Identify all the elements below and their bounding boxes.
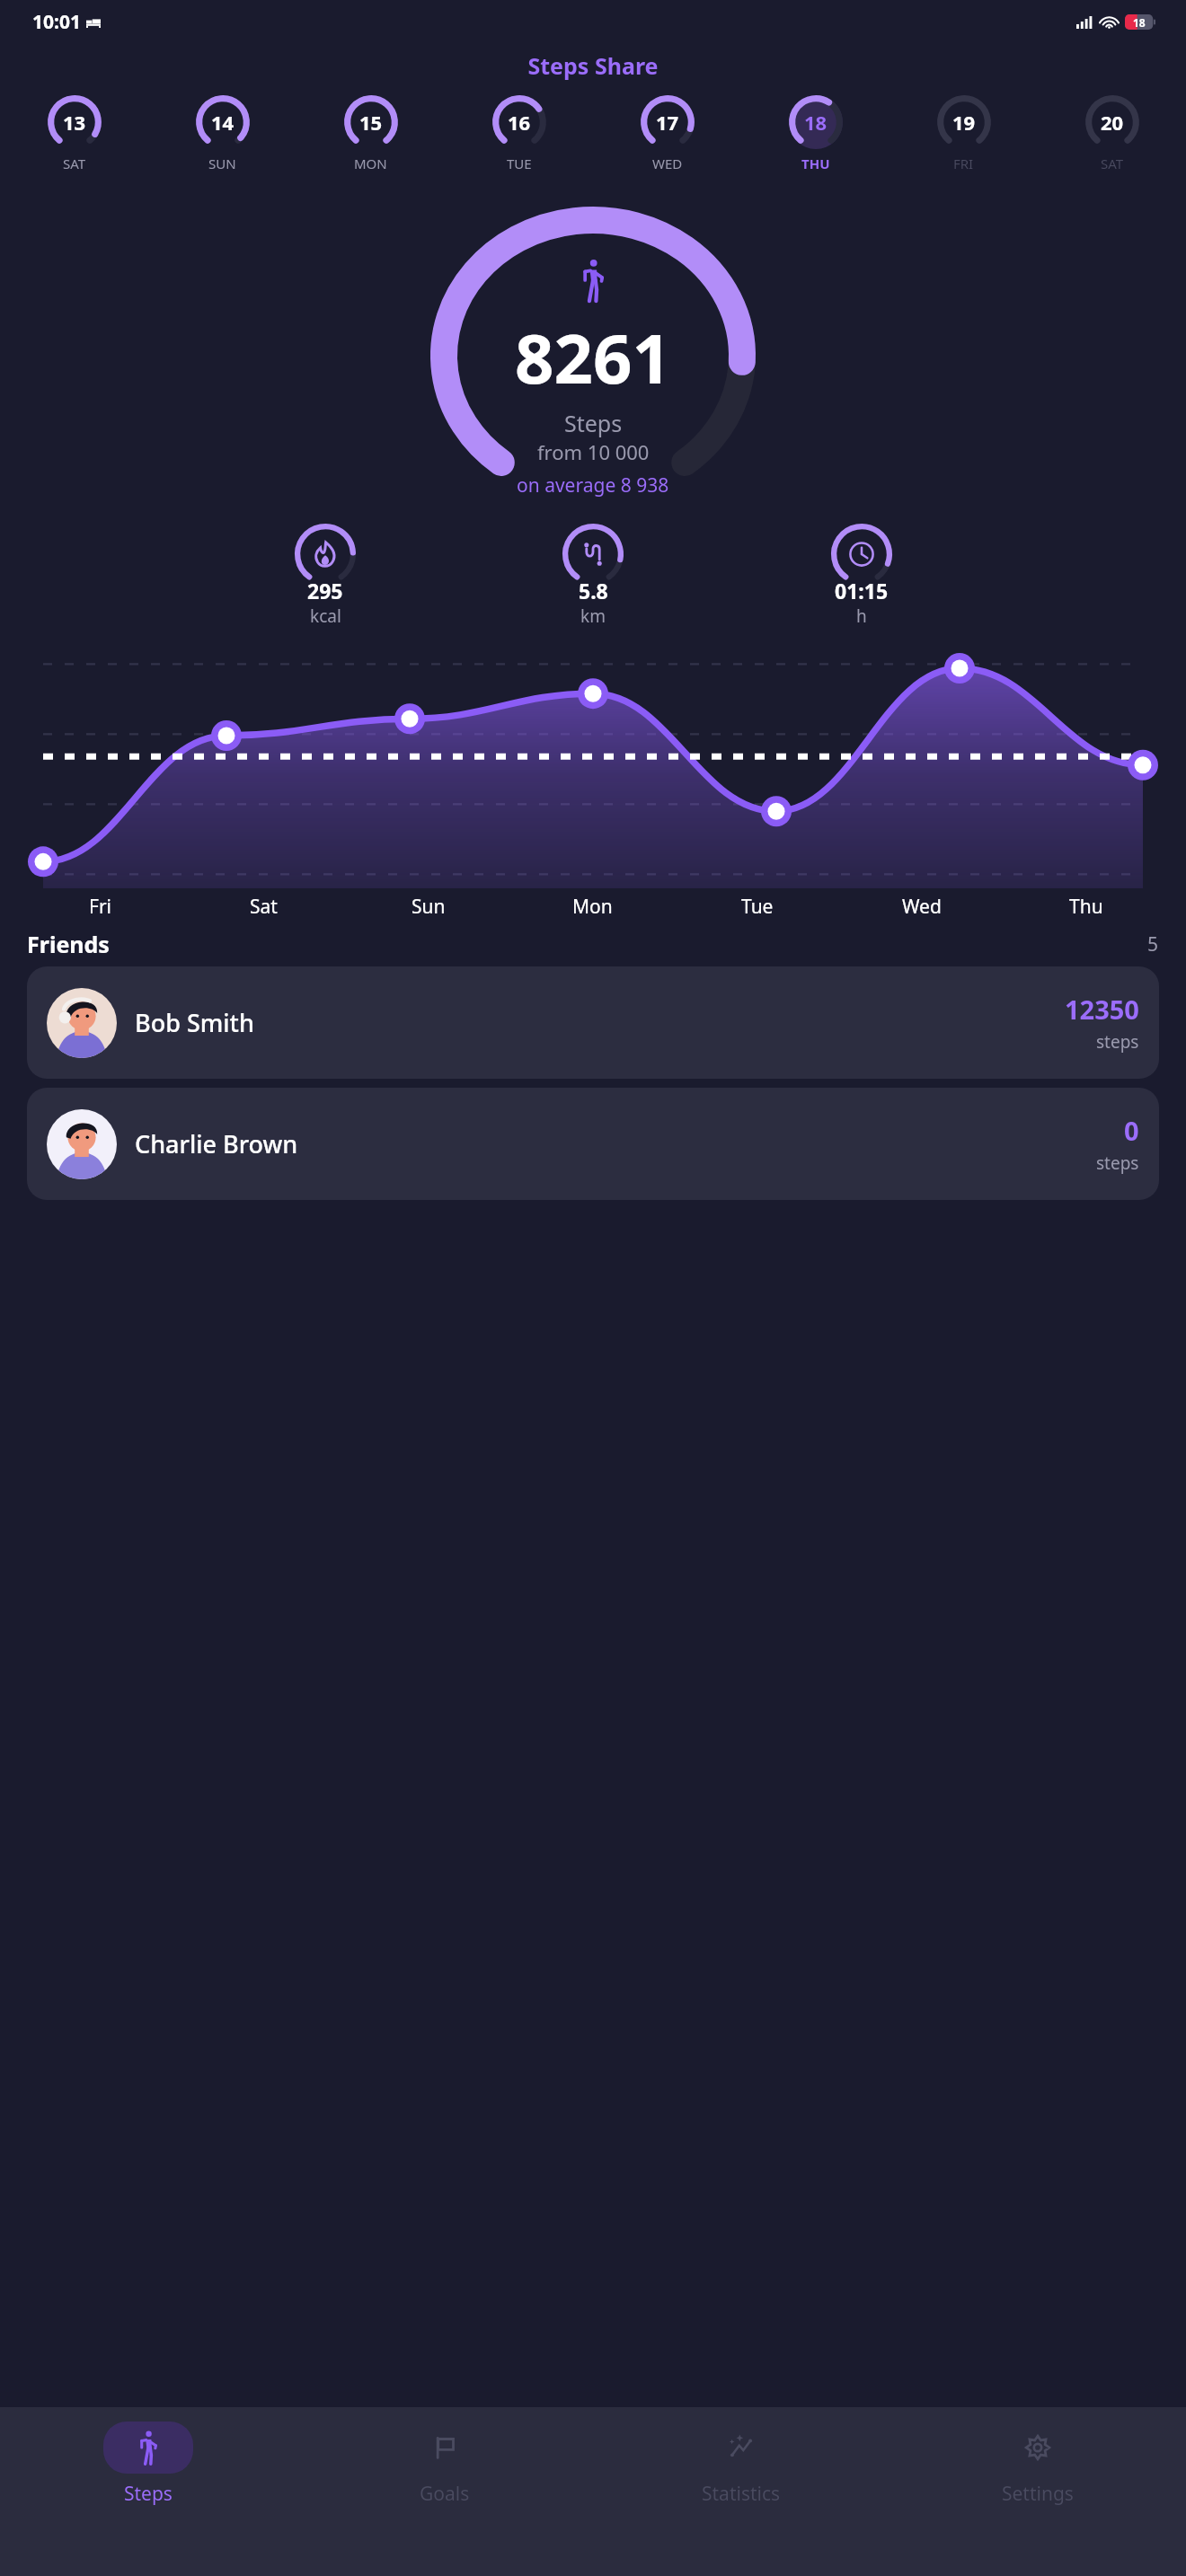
staticText: on average 8 938	[517, 472, 669, 498]
staticText: 18	[1133, 15, 1146, 30]
staticText: km	[580, 604, 606, 628]
staticText: Bob Smith	[135, 1006, 254, 1039]
button[interactable]: Goals	[296, 2422, 593, 2507]
staticText: 13	[63, 109, 86, 136]
staticText: steps	[1096, 1030, 1139, 1054]
staticText: 0	[1124, 1113, 1139, 1148]
button[interactable]: Bob Smith	[27, 966, 1159, 1079]
button[interactable]: 14	[148, 92, 296, 190]
staticText: Goals	[420, 2481, 470, 2507]
staticText: Thu	[1069, 894, 1103, 920]
staticText: THU	[801, 154, 830, 172]
staticText: SUN	[208, 154, 236, 172]
staticText: Fri	[89, 894, 111, 920]
staticText: FRI	[953, 154, 974, 172]
button[interactable]: 5.8	[560, 521, 626, 639]
button[interactable]: 19	[889, 92, 1038, 190]
staticText: 8261	[515, 311, 671, 404]
staticText: Statistics	[702, 2481, 781, 2507]
staticText: 10:01	[32, 9, 81, 35]
staticText: Sat	[250, 894, 278, 920]
staticText: 5	[1147, 931, 1159, 957]
staticText: from 10 000	[537, 438, 650, 465]
button[interactable]: 16	[445, 92, 593, 190]
staticText: WED	[652, 154, 683, 172]
button[interactable]: 20	[1038, 92, 1186, 190]
staticText: Steps Share	[0, 50, 1186, 81]
staticText: Steps	[124, 2481, 173, 2507]
staticText: 01:15	[835, 577, 889, 604]
staticText: MON	[354, 154, 387, 172]
staticText: SAT	[1101, 154, 1124, 172]
staticText: 14	[211, 109, 235, 136]
staticText: 16	[508, 109, 531, 136]
button[interactable]: 15	[296, 92, 445, 190]
staticText: 15	[359, 109, 383, 136]
staticText: 19	[952, 109, 976, 136]
staticText: Sun	[412, 894, 446, 920]
staticText: Steps	[564, 408, 623, 438]
button[interactable]: Settings	[889, 2422, 1186, 2507]
staticText: Charlie Brown	[135, 1127, 298, 1160]
staticText: Wed	[902, 894, 942, 920]
staticText: Mon	[572, 894, 613, 920]
button[interactable]: 17	[593, 92, 741, 190]
button[interactable]: 01:15	[828, 521, 895, 639]
button[interactable]: Steps	[0, 2422, 296, 2507]
staticText: h	[856, 604, 867, 628]
button[interactable]: 18	[741, 92, 889, 190]
button[interactable]: Statistics	[593, 2422, 889, 2507]
button[interactable]: 295	[292, 521, 358, 639]
staticText: 12350	[1065, 992, 1139, 1027]
button[interactable]: Charlie Brown	[27, 1088, 1159, 1200]
staticText: 17	[656, 109, 679, 136]
staticText: 20	[1101, 109, 1124, 136]
staticText: SAT	[63, 154, 86, 172]
staticText: 5.8	[579, 577, 608, 604]
staticText: Settings	[1002, 2481, 1074, 2507]
staticText: Friends	[27, 929, 110, 959]
staticText: 18	[804, 109, 828, 136]
button[interactable]: 13	[0, 92, 148, 190]
staticText: 295	[307, 577, 343, 604]
staticText: steps	[1096, 1151, 1139, 1175]
staticText: Tue	[741, 894, 774, 920]
staticText: TUE	[507, 154, 532, 172]
staticText: kcal	[310, 604, 341, 628]
